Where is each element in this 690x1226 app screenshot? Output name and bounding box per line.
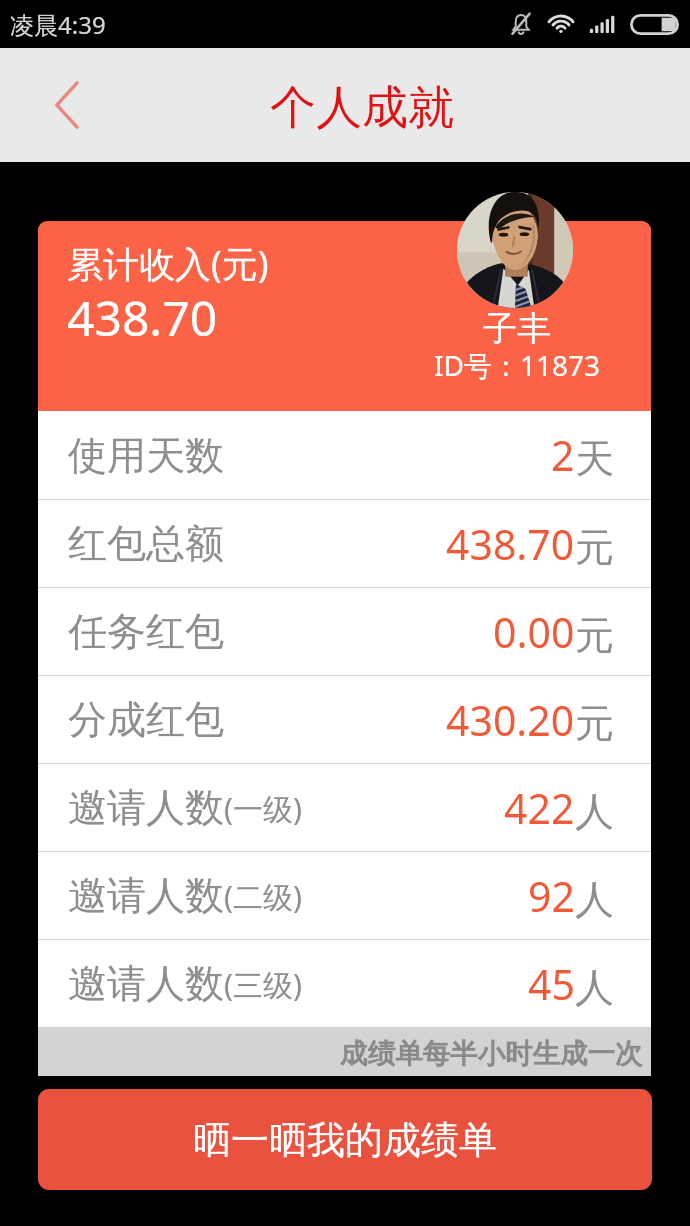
button[interactable]: 红包总额 bbox=[38, 500, 651, 587]
staticText: 使用天数 bbox=[68, 431, 224, 480]
button[interactable]: Back bbox=[0, 48, 134, 162]
button[interactable]: 分成红包 bbox=[38, 676, 651, 763]
staticText: 0.00 bbox=[493, 604, 575, 660]
button[interactable]: 邀请人数 bbox=[38, 852, 651, 939]
staticText: 422 bbox=[504, 780, 575, 836]
staticText: 430.20 bbox=[446, 692, 575, 748]
staticText: 个人成就 bbox=[270, 79, 454, 137]
button[interactable]: 邀请人数 bbox=[38, 764, 651, 851]
staticText: 子丰 bbox=[483, 307, 551, 350]
staticText: 邀请人数 bbox=[68, 871, 224, 920]
staticText: 元 bbox=[575, 523, 614, 572]
staticText: 92 bbox=[528, 868, 575, 924]
staticText: 凌晨4:39 bbox=[10, 8, 106, 41]
button[interactable]: 使用天数 bbox=[38, 411, 651, 499]
staticText: 邀请人数 bbox=[68, 783, 224, 832]
staticText: ID号：11873 bbox=[434, 346, 601, 384]
staticText: 元 bbox=[575, 699, 614, 748]
button[interactable]: 晒一晒我的成绩单 bbox=[38, 1089, 652, 1190]
staticText: 438.70 bbox=[446, 516, 575, 572]
staticText: 邀请人数 bbox=[68, 959, 224, 1008]
staticText: 2 bbox=[551, 427, 575, 483]
staticText: (二级) bbox=[224, 876, 302, 917]
staticText: 累计收入(元) bbox=[67, 239, 269, 288]
staticText: 元 bbox=[575, 611, 614, 660]
staticText: 45 bbox=[528, 956, 575, 1012]
button[interactable]: 邀请人数 bbox=[38, 940, 651, 1027]
staticText: 人 bbox=[575, 787, 614, 836]
staticText: 438.70 bbox=[67, 285, 218, 350]
button[interactable]: Profile photo bbox=[457, 192, 573, 308]
staticText: 红包总额 bbox=[68, 519, 224, 568]
staticText: 晒一晒我的成绩单 bbox=[193, 1116, 497, 1164]
staticText: 天 bbox=[575, 434, 614, 483]
staticText: 人 bbox=[575, 875, 614, 924]
staticText: (一级) bbox=[224, 788, 302, 829]
staticText: (三级) bbox=[224, 964, 302, 1005]
staticText: 成绩单每半小时生成一次 bbox=[340, 1037, 643, 1072]
button[interactable]: 任务红包 bbox=[38, 588, 651, 675]
staticText: 人 bbox=[575, 963, 614, 1012]
staticText: 任务红包 bbox=[68, 607, 224, 656]
staticText: 分成红包 bbox=[68, 695, 224, 744]
